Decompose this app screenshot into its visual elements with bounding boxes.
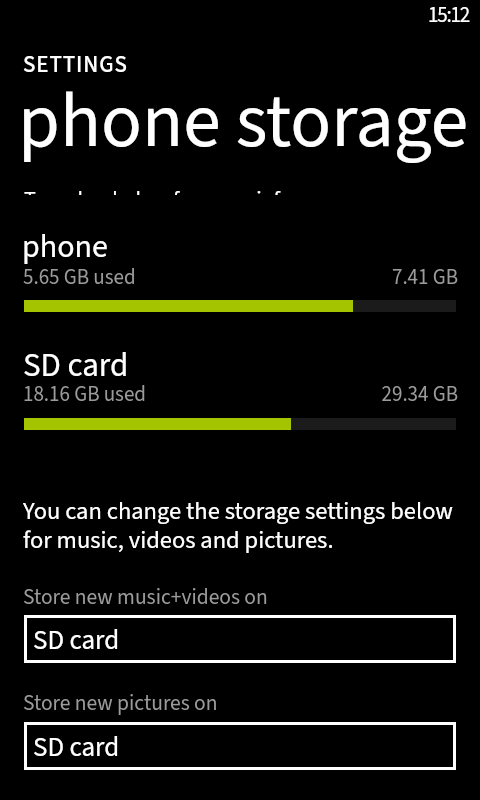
staticText: SD card — [23, 342, 129, 389]
staticText: SETTINGS — [23, 48, 128, 81]
button[interactable] — [24, 300, 456, 312]
staticText: You can change the storage settings belo… — [23, 494, 459, 558]
staticText: 7.41 GB — [26, 262, 458, 292]
staticText: SD card — [33, 728, 120, 766]
staticText: phone storage — [18, 80, 469, 164]
button[interactable] — [24, 418, 456, 430]
staticText: 15:12 — [1, 0, 469, 30]
button[interactable]: SD card — [27, 618, 453, 660]
button[interactable]: SD card — [27, 725, 453, 767]
staticText: Store new music+videos on — [23, 582, 268, 613]
staticText: Tap a bar below for more info. — [24, 191, 297, 195]
staticText: phone — [22, 224, 108, 270]
staticText: 18.16 GB used — [23, 379, 146, 409]
staticText: 29.34 GB — [26, 379, 458, 409]
staticText: SD card — [33, 621, 120, 659]
staticText: Store new pictures on — [23, 688, 218, 719]
staticText: 5.65 GB used — [23, 262, 136, 292]
